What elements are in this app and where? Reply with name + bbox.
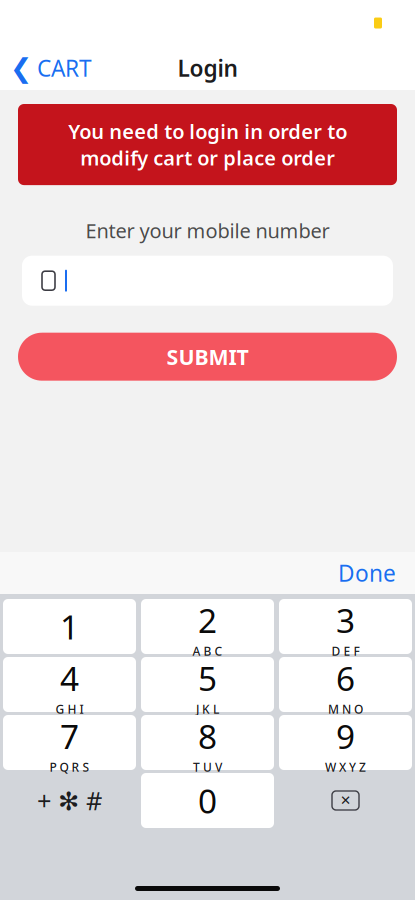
staticText: M N O xyxy=(328,701,363,717)
staticText: ❮ xyxy=(10,53,32,83)
staticText: 3 xyxy=(336,598,355,642)
button[interactable]: 1 xyxy=(3,599,136,654)
button[interactable]: 5 xyxy=(141,657,274,712)
staticText: 1 xyxy=(60,604,79,649)
button[interactable]: 7 xyxy=(3,715,136,770)
staticText: + ✻ # xyxy=(37,784,102,817)
staticText: W X Y Z xyxy=(325,759,366,775)
staticText: 2 xyxy=(198,598,217,642)
staticText: J K L xyxy=(196,701,219,717)
button[interactable]: Plus star pound xyxy=(3,773,136,828)
staticText: G H I xyxy=(55,701,83,717)
staticText: P Q R S xyxy=(49,759,89,775)
button[interactable]: 8 xyxy=(141,715,274,770)
staticText: 7 xyxy=(60,714,79,758)
staticText: Enter your mobile number xyxy=(85,217,329,244)
button[interactable]: 4 xyxy=(3,657,136,712)
button[interactable]: ❮ xyxy=(0,47,92,89)
button[interactable]: 2 xyxy=(141,599,274,654)
staticText: SUBMIT xyxy=(166,342,248,371)
button[interactable]: Delete xyxy=(279,773,412,828)
staticText: ✕ xyxy=(340,793,351,808)
button[interactable]: 3 xyxy=(279,599,412,654)
staticText: CART xyxy=(37,53,92,83)
staticText: 5 xyxy=(198,656,217,700)
button[interactable]: 6 xyxy=(279,657,412,712)
staticText: 8 xyxy=(198,714,217,758)
staticText: Login xyxy=(177,53,237,83)
button[interactable] xyxy=(22,256,393,306)
staticText: 6 xyxy=(336,656,355,700)
staticText: T U V xyxy=(193,759,222,775)
staticText: 0 xyxy=(198,778,217,823)
staticText: Done xyxy=(338,558,396,588)
staticText: D E F xyxy=(331,643,359,659)
button[interactable]: SUBMIT xyxy=(18,333,397,381)
staticText: A B C xyxy=(192,643,222,659)
staticText: 9 xyxy=(336,714,355,758)
button[interactable]: 9 xyxy=(279,715,412,770)
button[interactable]: 0 xyxy=(141,773,274,828)
staticText: 4 xyxy=(60,656,79,700)
button[interactable]: Done xyxy=(324,550,410,596)
staticText: You need to login in order to modify car… xyxy=(68,118,347,171)
